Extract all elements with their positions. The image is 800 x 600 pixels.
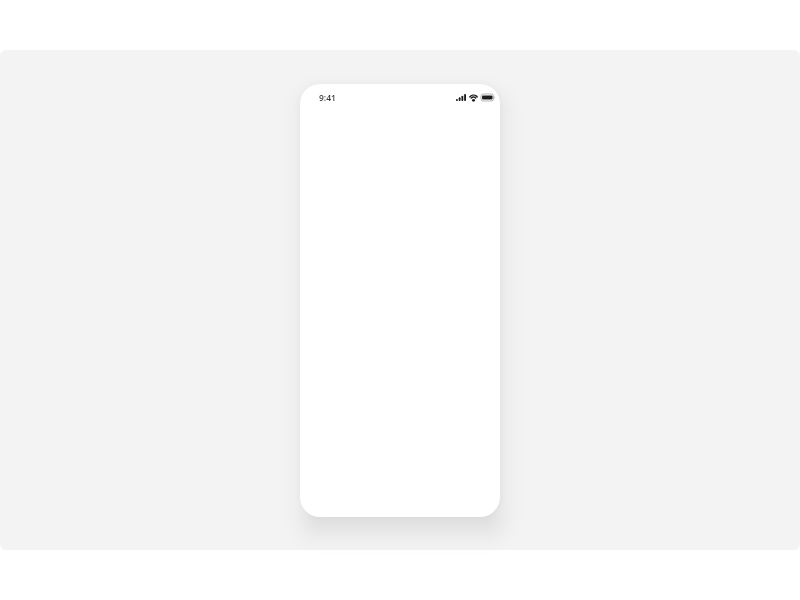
button[interactable]: 9:41 <box>300 84 500 517</box>
staticText: 9:41 <box>319 92 336 104</box>
other: Signal, Wi-Fi and battery status <box>456 94 495 101</box>
